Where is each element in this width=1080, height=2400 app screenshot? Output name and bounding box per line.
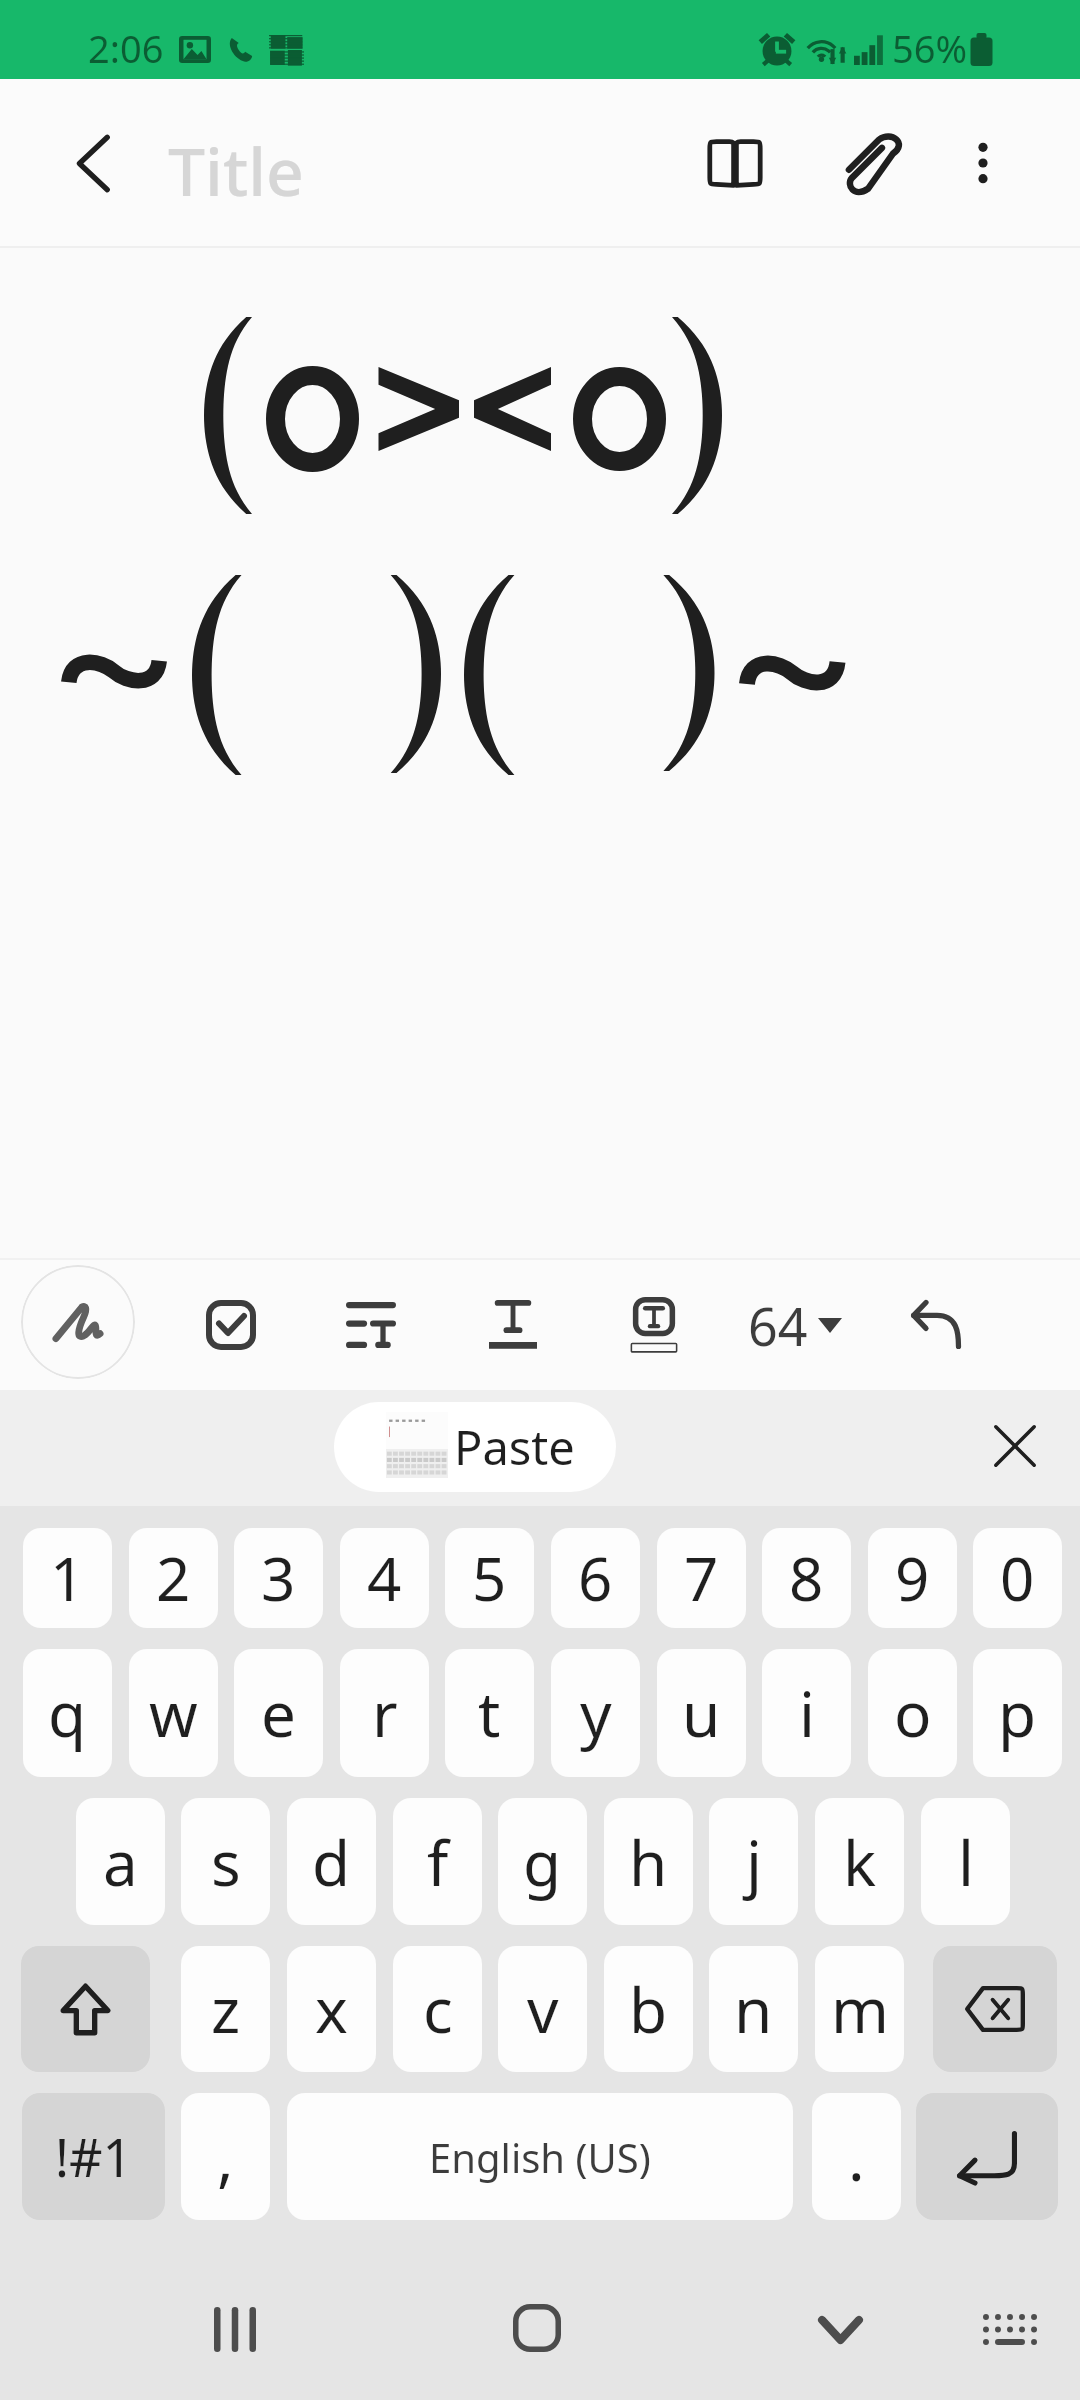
button[interactable]: a [76,1798,165,1925]
button[interactable]: j [709,1798,798,1925]
button[interactable]: Handwriting [21,1265,135,1379]
staticText: 7 [684,1537,719,1619]
staticText: 8 [789,1537,824,1619]
staticText: y [580,1671,612,1755]
button[interactable]: r [340,1649,429,1777]
staticText: z [211,1967,241,2051]
staticText: q [48,1671,87,1755]
staticText: Paste [454,1415,575,1479]
button[interactable]: Enter [916,2093,1058,2220]
button[interactable]: Paragraph [326,1280,416,1370]
button[interactable]: 64 [748,1290,842,1360]
staticText: !#1 [55,2121,133,2192]
button[interactable]: 8 [762,1528,851,1628]
button[interactable]: w [129,1649,218,1777]
button[interactable]: Recents [180,2274,290,2384]
button[interactable]: g [498,1798,587,1925]
button[interactable]: Close [980,1411,1050,1481]
staticText: v [527,1967,559,2051]
staticText: a [103,1820,138,1904]
button[interactable]: l [921,1798,1010,1925]
button[interactable]: 0 [973,1528,1062,1628]
button[interactable]: p [973,1649,1062,1777]
staticText: i [799,1671,815,1755]
button[interactable]: Undo [891,1280,981,1370]
button[interactable]: English (US) [287,2093,793,2220]
button[interactable]: y [551,1649,640,1777]
button[interactable]: , [181,2093,270,2220]
staticText: 9 [895,1537,930,1619]
button[interactable]: d [287,1798,376,1925]
button[interactable]: Text style [468,1280,558,1370]
button[interactable]: More options [923,79,1043,247]
staticText: Title [168,125,304,215]
button[interactable]: z [181,1946,270,2072]
staticText: p [998,1671,1037,1755]
button[interactable]: . [812,2093,901,2220]
button[interactable]: 2 [129,1528,218,1628]
button[interactable]: Switch keyboard [955,2274,1065,2384]
staticText: e [261,1671,296,1755]
button[interactable]: q [23,1649,112,1777]
staticText: 2 [156,1537,191,1619]
staticText: , [217,2115,234,2199]
staticText: 64 [748,1290,808,1360]
button[interactable]: 7 [657,1528,746,1628]
button[interactable]: Paste [334,1402,616,1492]
button[interactable]: Home [482,2273,592,2383]
button[interactable]: x [287,1946,376,2072]
button[interactable]: Attach [813,79,933,247]
staticText: 4 [367,1537,402,1619]
button[interactable]: 1 [23,1528,112,1628]
staticText: t [478,1671,501,1755]
staticText: 2:06 [88,22,164,74]
staticText: g [523,1820,562,1904]
staticText: u [682,1671,721,1755]
button[interactable]: 4 [340,1528,429,1628]
button[interactable]: f [393,1798,482,1925]
button[interactable]: Backspace [933,1946,1057,2072]
button[interactable]: 5 [445,1528,534,1628]
staticText: m [831,1967,889,2051]
staticText: 3 [261,1537,296,1619]
button[interactable]: Text box [609,1280,699,1370]
staticText: 56% [892,22,968,74]
staticText: s [211,1820,241,1904]
staticText: w [149,1671,198,1755]
staticText: 6 [578,1537,613,1619]
staticText: d [312,1820,351,1904]
staticText: x [315,1967,348,2051]
button[interactable]: Back [9,79,177,247]
staticText: 1 [50,1537,85,1619]
button[interactable]: t [445,1649,534,1777]
button[interactable]: Shift [21,1946,150,2072]
button[interactable]: c [393,1946,482,2072]
button[interactable]: n [709,1946,798,2072]
button[interactable]: u [657,1649,746,1777]
button[interactable]: 6 [551,1528,640,1628]
button[interactable]: 9 [868,1528,957,1628]
button[interactable]: Reading mode [675,79,795,247]
button[interactable]: i [762,1649,851,1777]
button[interactable]: s [181,1798,270,1925]
staticText: h [629,1820,668,1904]
button[interactable]: b [604,1946,693,2072]
button[interactable]: e [234,1649,323,1777]
staticText: 5 [472,1537,507,1619]
staticText: l [958,1820,974,1904]
button[interactable]: Hide keyboard [785,2275,895,2385]
button[interactable]: 3 [234,1528,323,1628]
staticText: 0 [1000,1537,1035,1619]
button[interactable]: k [815,1798,904,1925]
staticText: b [629,1967,668,2051]
button[interactable]: !#1 [22,2093,165,2220]
button[interactable]: v [498,1946,587,2072]
button[interactable]: h [604,1798,693,1925]
staticText: k [843,1820,877,1904]
staticText: j [746,1820,762,1904]
button[interactable]: Checklist [186,1280,276,1370]
button[interactable]: m [815,1946,904,2072]
staticText: n [734,1967,773,2051]
button[interactable]: o [868,1649,957,1777]
staticText: English (US) [429,2130,651,2184]
